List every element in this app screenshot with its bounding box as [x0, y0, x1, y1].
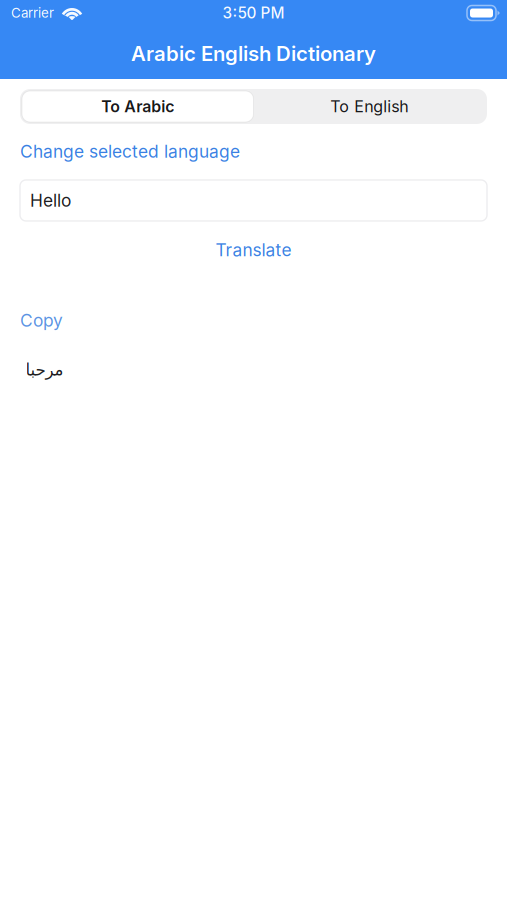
- button[interactable]: To Arabic: [22, 91, 253, 122]
- staticText: Copy: [20, 310, 63, 331]
- button[interactable]: To English: [253, 91, 485, 122]
- staticText: Change selected language: [20, 141, 240, 162]
- staticText: Translate: [215, 239, 291, 260]
- staticText: Hello: [30, 190, 71, 211]
- staticText: To Arabic: [101, 97, 174, 116]
- staticText: Arabic English Dictionary: [131, 41, 376, 66]
- button[interactable]: Translate: [20, 235, 487, 265]
- staticText: 3:50 PM: [222, 4, 284, 22]
- button[interactable]: Copy: [20, 310, 63, 331]
- staticText: To English: [330, 97, 408, 116]
- staticText: Carrier: [11, 5, 54, 21]
- button[interactable]: Change selected language: [20, 141, 240, 162]
- staticText: مرحبا: [25, 360, 63, 379]
